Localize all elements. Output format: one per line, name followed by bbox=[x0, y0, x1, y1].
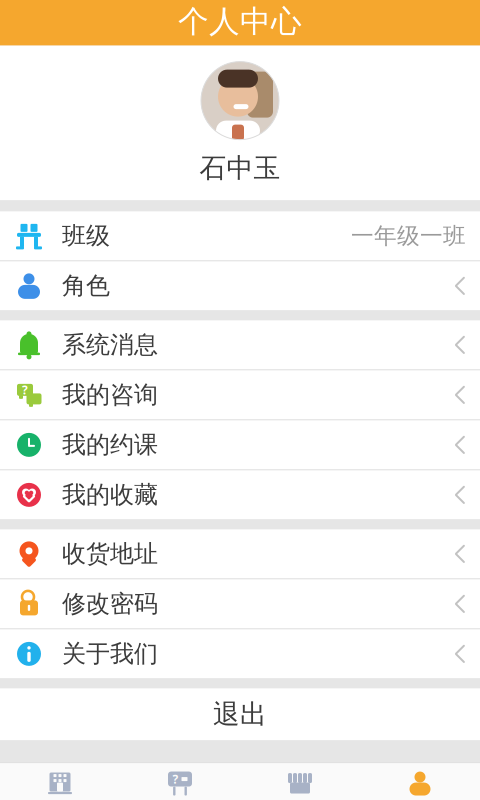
staticText: ? bbox=[172, 771, 178, 787]
staticText: 修改密码 bbox=[62, 589, 158, 619]
button[interactable]: 班级 bbox=[0, 211, 480, 260]
staticText: 班级 bbox=[62, 221, 110, 251]
button[interactable]: 角色 bbox=[0, 261, 480, 310]
button[interactable]: 收货地址 bbox=[0, 529, 480, 578]
button[interactable]: 我的收藏 bbox=[0, 470, 480, 519]
staticText: 关于我们 bbox=[62, 639, 158, 669]
button[interactable]: 我 bbox=[360, 763, 480, 800]
staticText: 个人中心 bbox=[178, 3, 302, 40]
button[interactable]: 关于我们 bbox=[0, 629, 480, 678]
staticText: 系统消息 bbox=[62, 330, 158, 360]
staticText: 我的收藏 bbox=[62, 480, 158, 510]
staticText: 石中玉 bbox=[199, 152, 280, 184]
button[interactable]: ? bbox=[0, 370, 480, 419]
staticText: 我的约课 bbox=[62, 430, 158, 460]
button[interactable]: 修改密码 bbox=[0, 579, 480, 628]
button[interactable]: 智豆商城 bbox=[240, 763, 360, 800]
button[interactable]: 校园 bbox=[0, 763, 120, 800]
staticText: 退出 bbox=[213, 698, 267, 731]
staticText: 我的咨询 bbox=[62, 380, 158, 410]
button[interactable]: 退出 bbox=[0, 688, 480, 740]
staticText: 收货地址 bbox=[62, 539, 158, 569]
button[interactable]: 系统消息 bbox=[0, 320, 480, 369]
button[interactable]: ? bbox=[120, 763, 240, 800]
staticText: ? bbox=[22, 382, 28, 398]
staticText: 一年级一班 bbox=[351, 222, 466, 250]
staticText: 角色 bbox=[62, 271, 110, 301]
button[interactable]: 我的约课 bbox=[0, 420, 480, 469]
